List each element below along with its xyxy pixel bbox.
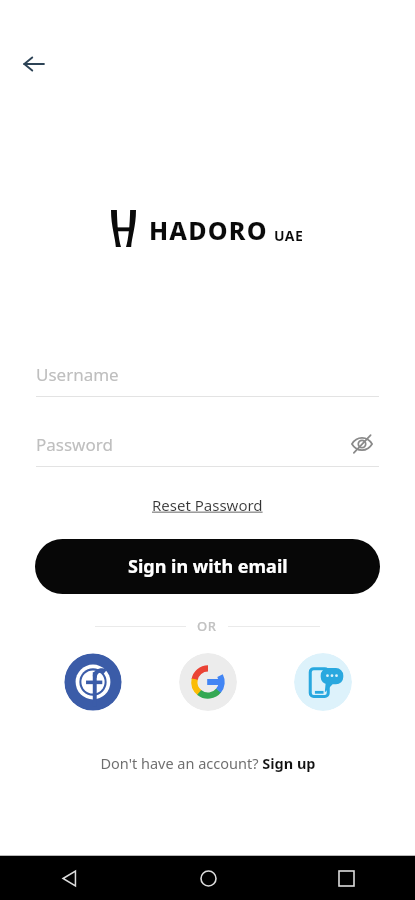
staticText: UAE [274, 226, 304, 245]
staticText: Username [36, 363, 119, 386]
button[interactable]: Password [36, 422, 345, 466]
button[interactable]: Home [139, 856, 277, 900]
button[interactable]: Sign in with Facebook [64, 653, 122, 711]
button[interactable]: Sign in with Google [179, 653, 237, 711]
button[interactable]: Recent apps [277, 856, 415, 900]
button[interactable]: Sign in with SMS [294, 653, 352, 711]
button[interactable]: Don't have an account? Sign up [92, 749, 324, 777]
button[interactable]: Sign in with email [35, 539, 380, 594]
button[interactable]: Username [36, 352, 379, 396]
staticText: HADORO [149, 213, 268, 247]
staticText: Password [36, 433, 113, 456]
staticText: OR [197, 617, 217, 635]
staticText: Reset Password [152, 495, 263, 515]
button[interactable]: Back [12, 42, 56, 86]
button[interactable]: Back [0, 856, 139, 900]
button[interactable]: Show password [345, 427, 379, 461]
staticText: Don't have an account? Sign up [100, 753, 316, 773]
staticText: Sign in with email [128, 554, 288, 579]
button[interactable]: Reset Password [146, 491, 269, 519]
